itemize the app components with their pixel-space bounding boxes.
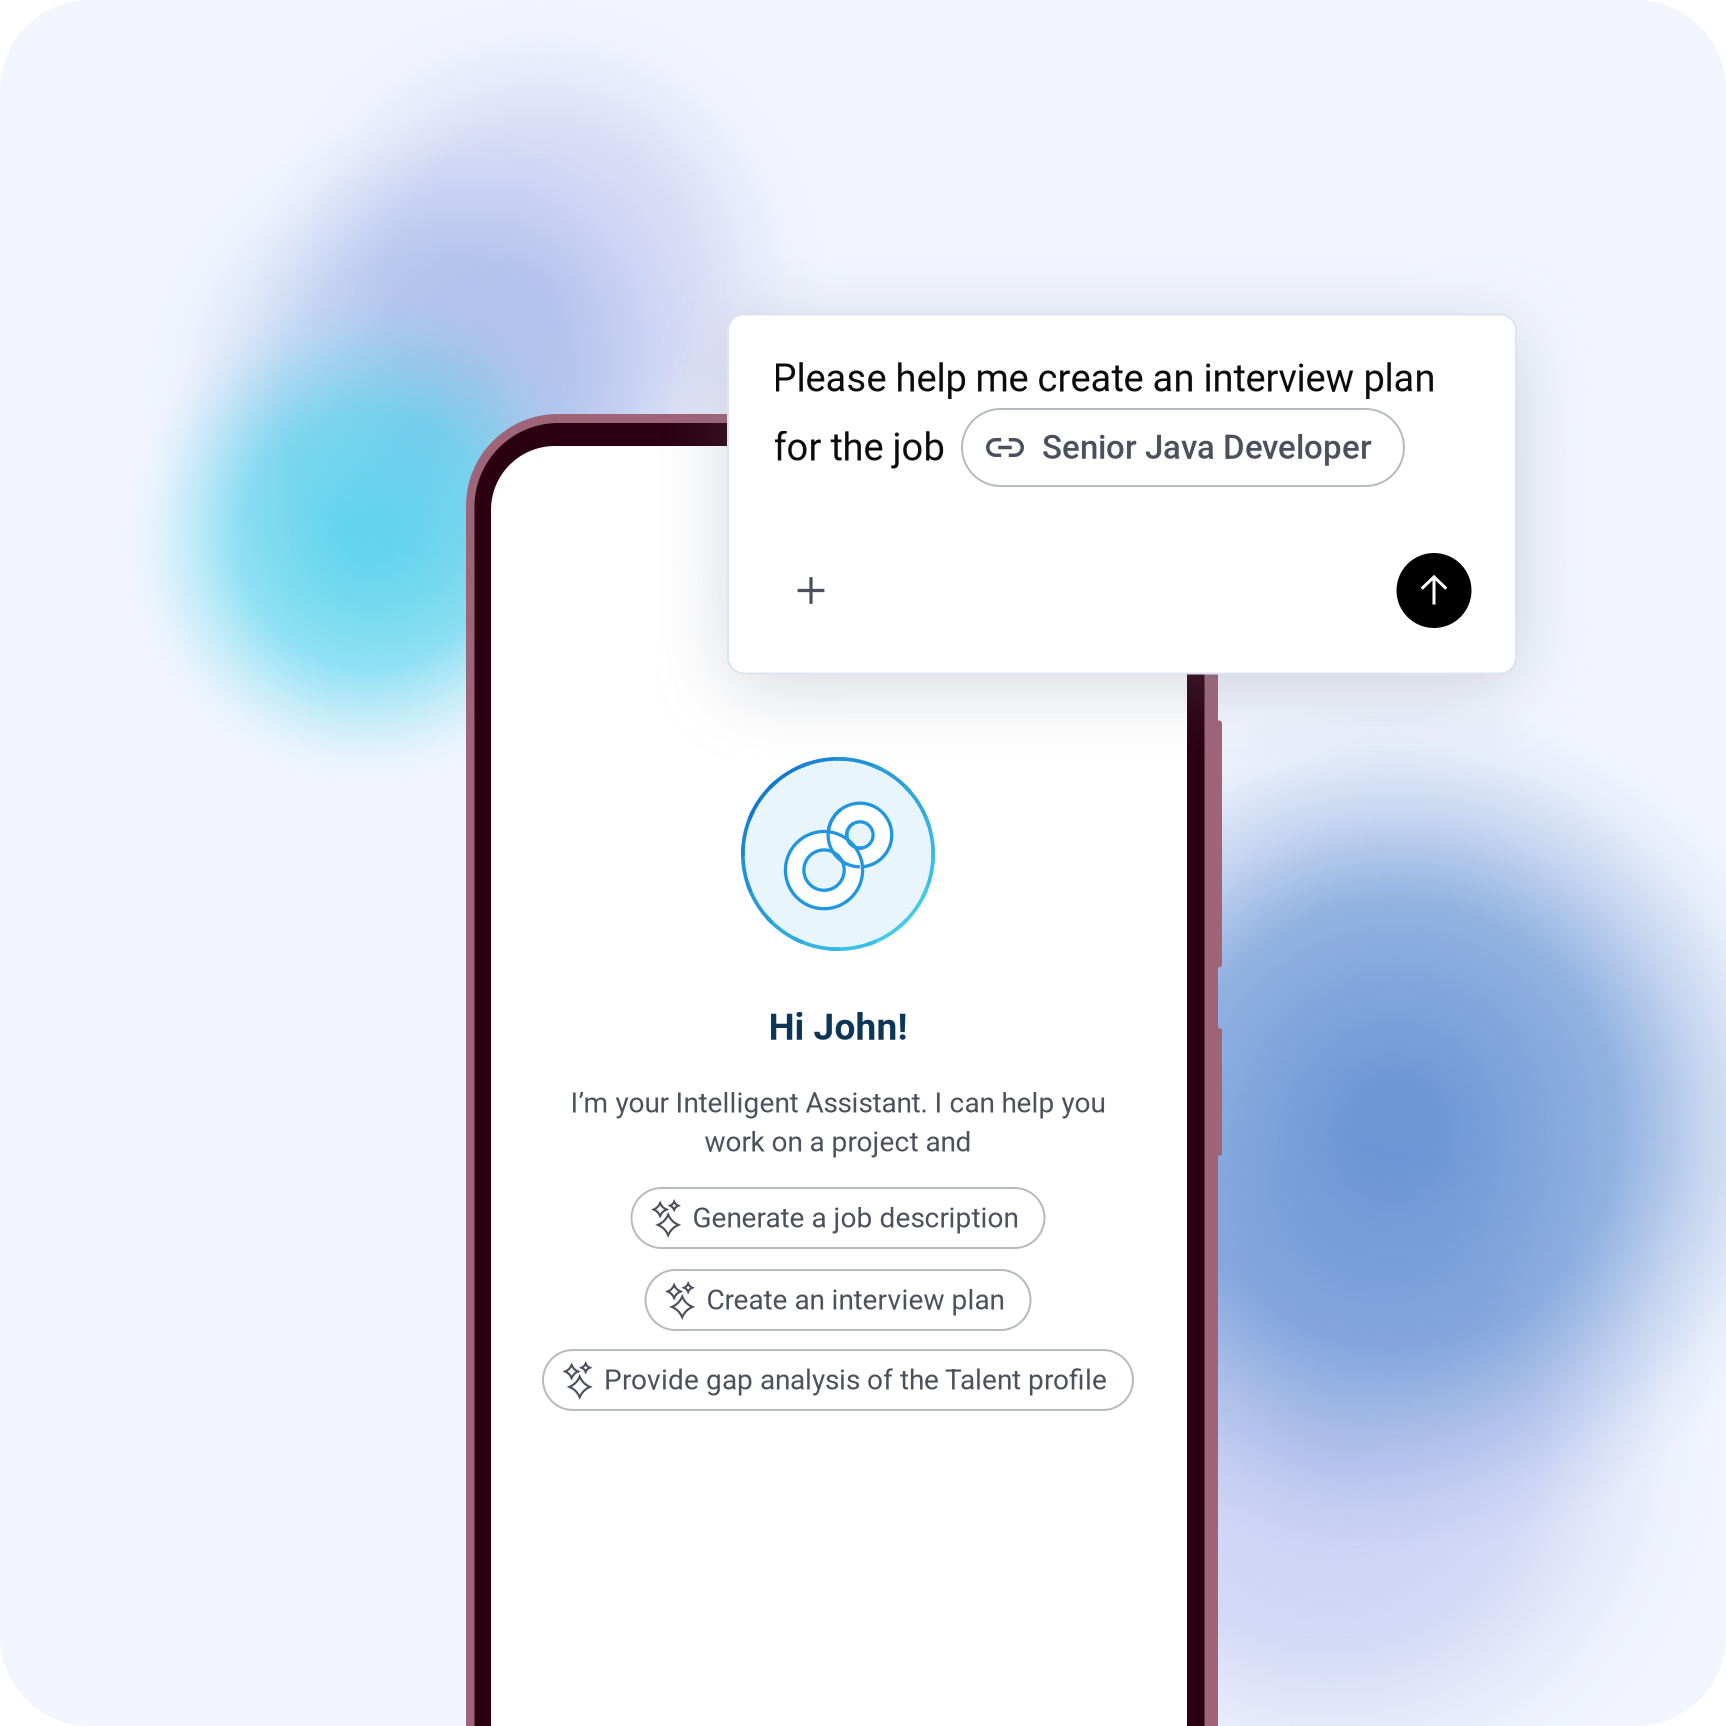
- staticText: Provide gap analysis of the Talent profi…: [604, 1364, 1107, 1396]
- button[interactable]: Add attachment: [780, 559, 842, 621]
- button[interactable]: Create an interview plan: [645, 1270, 1030, 1330]
- staticText: Hi John!: [768, 1005, 907, 1049]
- staticText: for the job: [773, 425, 944, 470]
- staticText: I’m your Intelligent Assistant. I can he…: [570, 1087, 1105, 1119]
- button[interactable]: Send: [1396, 553, 1471, 628]
- button[interactable]: Senior Java Developer: [962, 409, 1404, 486]
- button[interactable]: Provide gap analysis of the Talent profi…: [543, 1350, 1133, 1410]
- staticText: Create an interview plan: [706, 1284, 1004, 1316]
- staticText: work on a project and: [704, 1126, 971, 1158]
- staticText: Senior Java Developer: [1042, 428, 1372, 467]
- button[interactable]: Generate a job description: [631, 1188, 1044, 1248]
- staticText: Please help me create an interview plan: [772, 356, 1435, 401]
- staticText: Generate a job description: [692, 1202, 1018, 1234]
